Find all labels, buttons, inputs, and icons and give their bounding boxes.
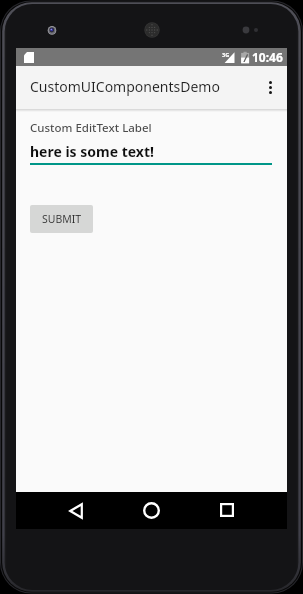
staticText: Custom EditText Label <box>30 120 152 136</box>
button[interactable]: Home <box>135 494 168 527</box>
button[interactable]: Back <box>59 494 92 527</box>
staticText: SUBMIT <box>42 212 82 226</box>
button[interactable]: SUBMIT <box>30 205 93 233</box>
staticText: here is some text! <box>30 142 154 161</box>
staticText: 10:46 <box>252 49 283 65</box>
staticText: CustomUIComponentsDemo <box>30 77 220 96</box>
staticText: 3G <box>222 51 230 59</box>
button[interactable]: Recents <box>210 493 243 526</box>
button[interactable]: More options <box>253 66 287 109</box>
